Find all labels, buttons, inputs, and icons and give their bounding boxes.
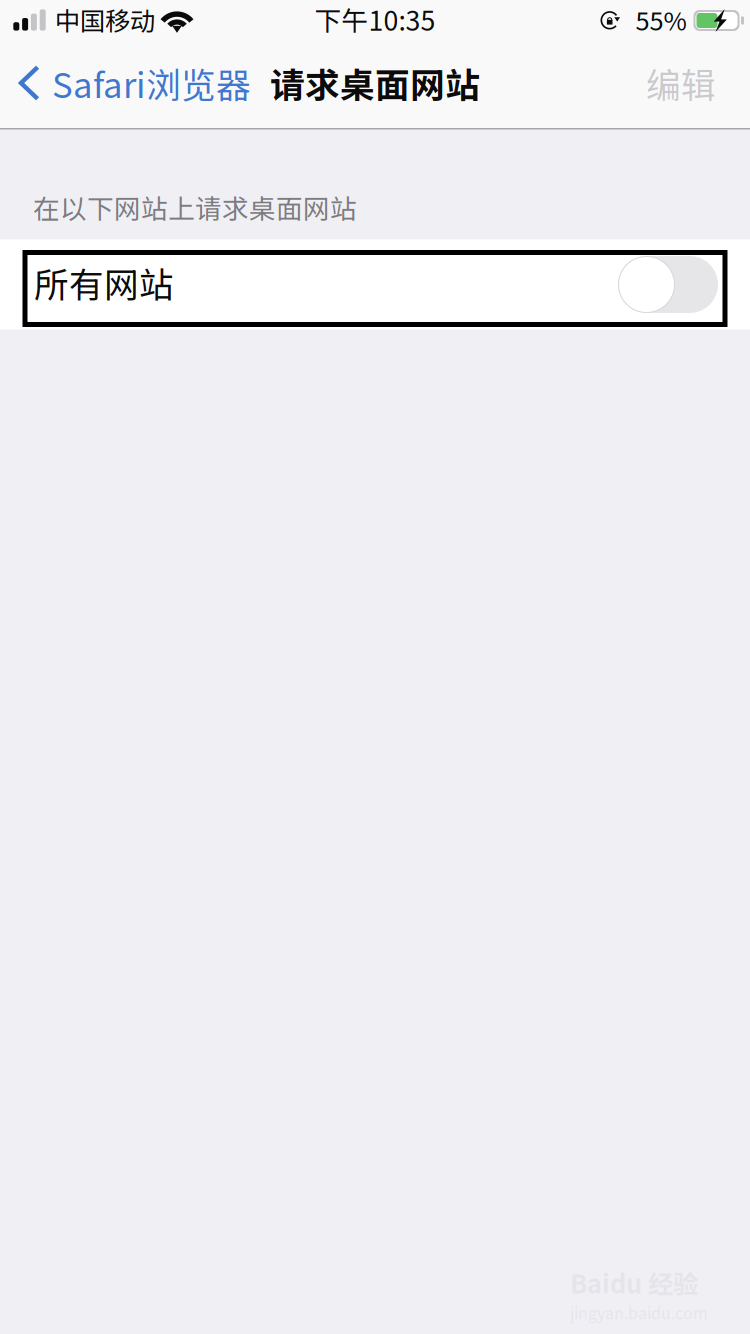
button[interactable]: Safari浏览器 [0,44,261,128]
staticText: jingyan.baidu.com [570,1301,708,1324]
staticText: 55% [635,1,686,38]
staticText: 在以下网站上请求桌面网站 [33,188,357,226]
button[interactable]: 编辑 [626,44,750,128]
staticText: 请求桌面网站 [270,58,480,108]
button[interactable]: 所有网站 [618,256,750,313]
staticText: 所有网站 [34,257,174,308]
staticText: Safari浏览器 [52,58,251,108]
staticText: 中国移动 [55,1,155,38]
staticText: 下午10:35 [314,0,435,38]
staticText: 编辑 [646,58,716,108]
staticText: Baidu 经验 [570,1264,698,1301]
